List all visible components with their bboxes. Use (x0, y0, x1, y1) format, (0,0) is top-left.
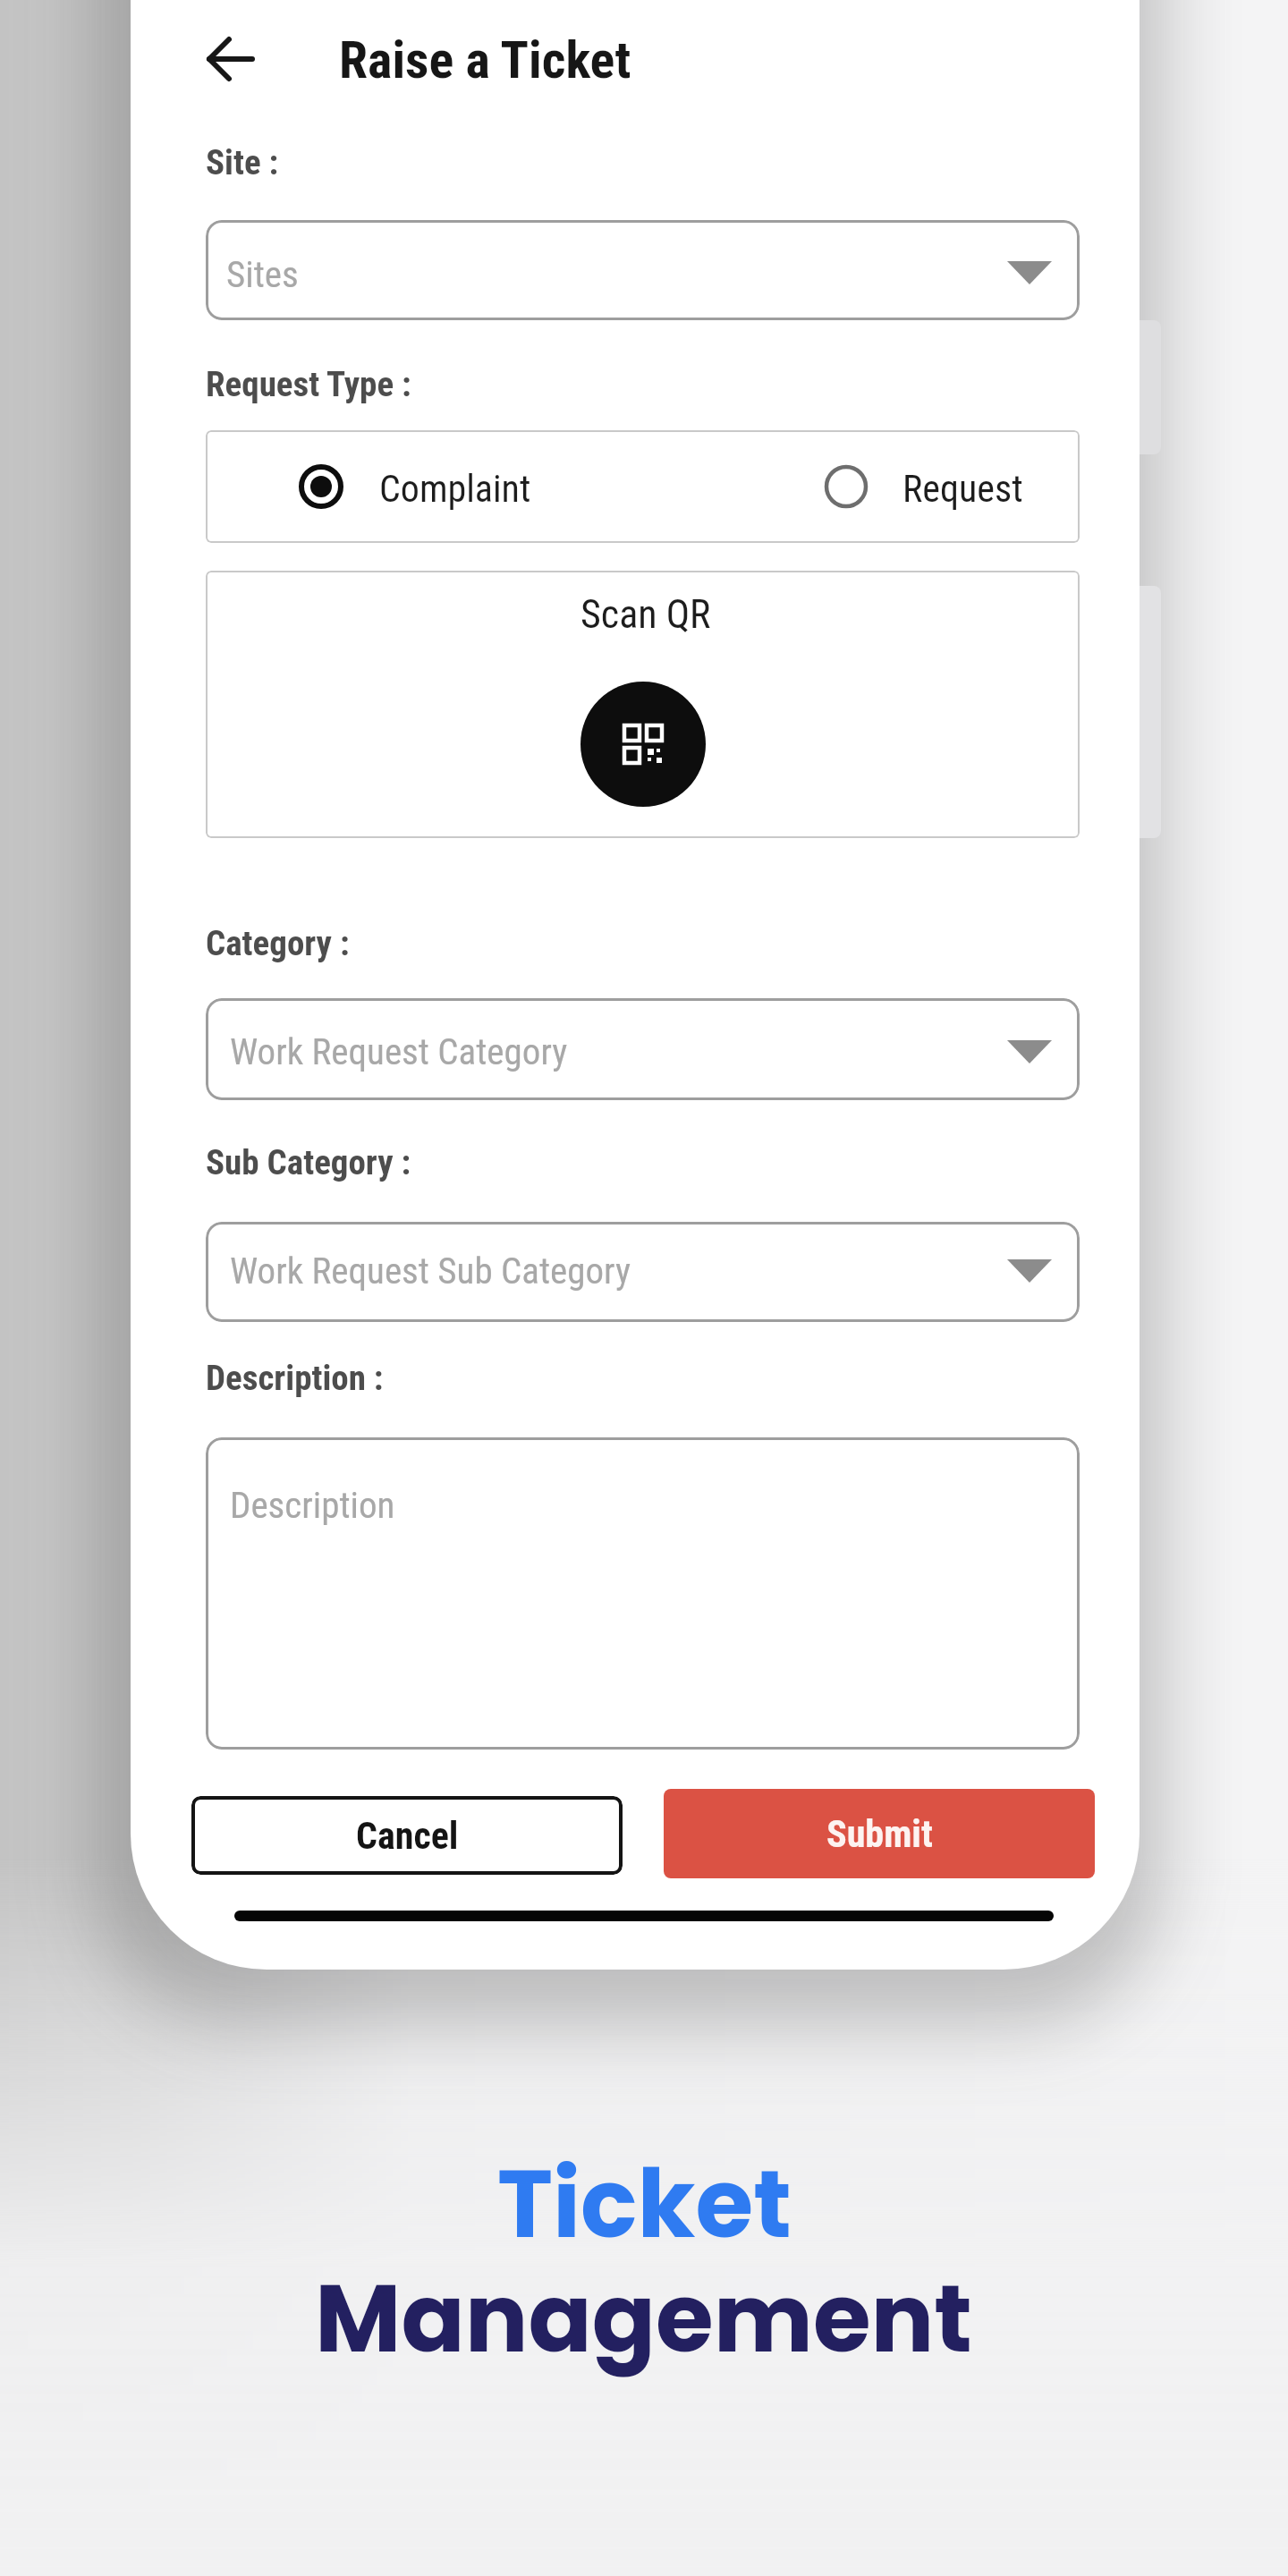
button[interactable] (206, 220, 1080, 320)
staticText: Sub Category : (206, 1142, 411, 1183)
staticText: Scan QR (580, 591, 711, 638)
staticText: Request (902, 467, 1023, 511)
staticText: Work Request Sub Category (230, 1250, 631, 1292)
button[interactable] (199, 27, 267, 93)
staticText: Sites (226, 253, 299, 296)
button[interactable] (206, 430, 1080, 543)
button[interactable] (206, 571, 1080, 838)
staticText: Ticket (497, 2139, 792, 2270)
staticText: Request Type : (206, 364, 411, 405)
staticText: Description : (206, 1358, 384, 1399)
staticText: Management (315, 2253, 973, 2385)
staticText: Complaint (379, 467, 531, 511)
staticText: Raise a Ticket (339, 30, 631, 90)
staticText: Site : (206, 142, 279, 183)
button[interactable] (206, 1437, 1080, 1750)
staticText: Description (230, 1484, 395, 1527)
button[interactable]: Submit (664, 1789, 1095, 1878)
staticText: Submit (826, 1812, 933, 1856)
button[interactable] (206, 998, 1080, 1100)
button[interactable] (206, 1222, 1080, 1322)
button[interactable] (580, 682, 706, 807)
staticText: Category : (206, 923, 350, 964)
staticText: Work Request Category (230, 1030, 568, 1073)
staticText: Cancel (356, 1814, 459, 1858)
button[interactable]: Cancel (191, 1796, 623, 1875)
